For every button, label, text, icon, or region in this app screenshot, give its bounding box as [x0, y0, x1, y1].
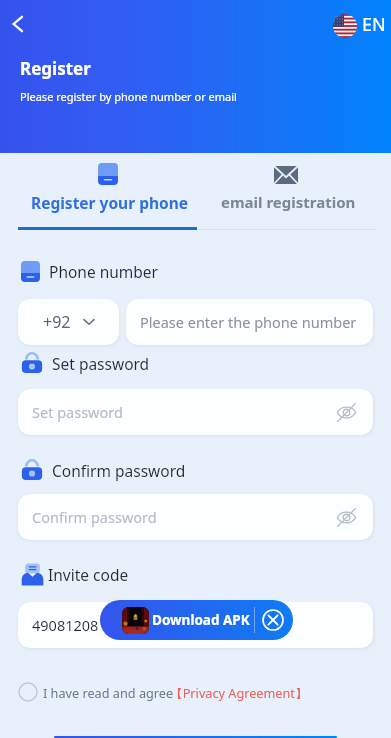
staticText: I have read and agree	[43, 684, 174, 701]
staticText: Set password	[32, 402, 123, 422]
button[interactable]: 49081208	[18, 602, 373, 648]
button[interactable]: Download APK	[100, 600, 293, 640]
button[interactable]: Please enter the phone number	[126, 299, 373, 345]
button[interactable]: Register	[54, 736, 337, 738]
staticText: Confirm password	[32, 507, 157, 527]
button[interactable]: Show password	[334, 400, 358, 424]
staticText: Confirm password	[52, 460, 186, 481]
staticText: Set password	[52, 353, 150, 374]
staticText: +92	[43, 311, 71, 333]
staticText: Register	[20, 57, 91, 80]
button[interactable]: Confirm password	[18, 494, 373, 540]
staticText: Please register by phone number or email	[20, 89, 237, 104]
button[interactable]: I have read and agree	[18, 682, 312, 702]
staticText: Please enter the phone number	[140, 312, 357, 332]
button[interactable]: +92	[18, 299, 119, 345]
staticText: Register	[162, 736, 229, 738]
button[interactable]: Back	[3, 9, 33, 39]
staticText: EN	[362, 12, 386, 37]
button[interactable]: Register your phone	[0, 153, 195, 231]
staticText: 【Privacy Agreement】	[170, 684, 308, 701]
staticText: Download APK	[152, 611, 250, 629]
staticText: Register your phone	[31, 192, 189, 213]
button[interactable]: EN	[333, 13, 386, 38]
staticText: 49081208	[32, 615, 99, 635]
button[interactable]: Set password	[18, 389, 373, 435]
staticText: Phone number	[49, 261, 159, 282]
staticText: Invite code	[48, 564, 129, 585]
button[interactable]: email registration	[195, 153, 391, 231]
button[interactable]: Show password	[334, 505, 358, 529]
staticText: email registration	[221, 192, 356, 212]
button[interactable]: Close	[262, 609, 284, 631]
